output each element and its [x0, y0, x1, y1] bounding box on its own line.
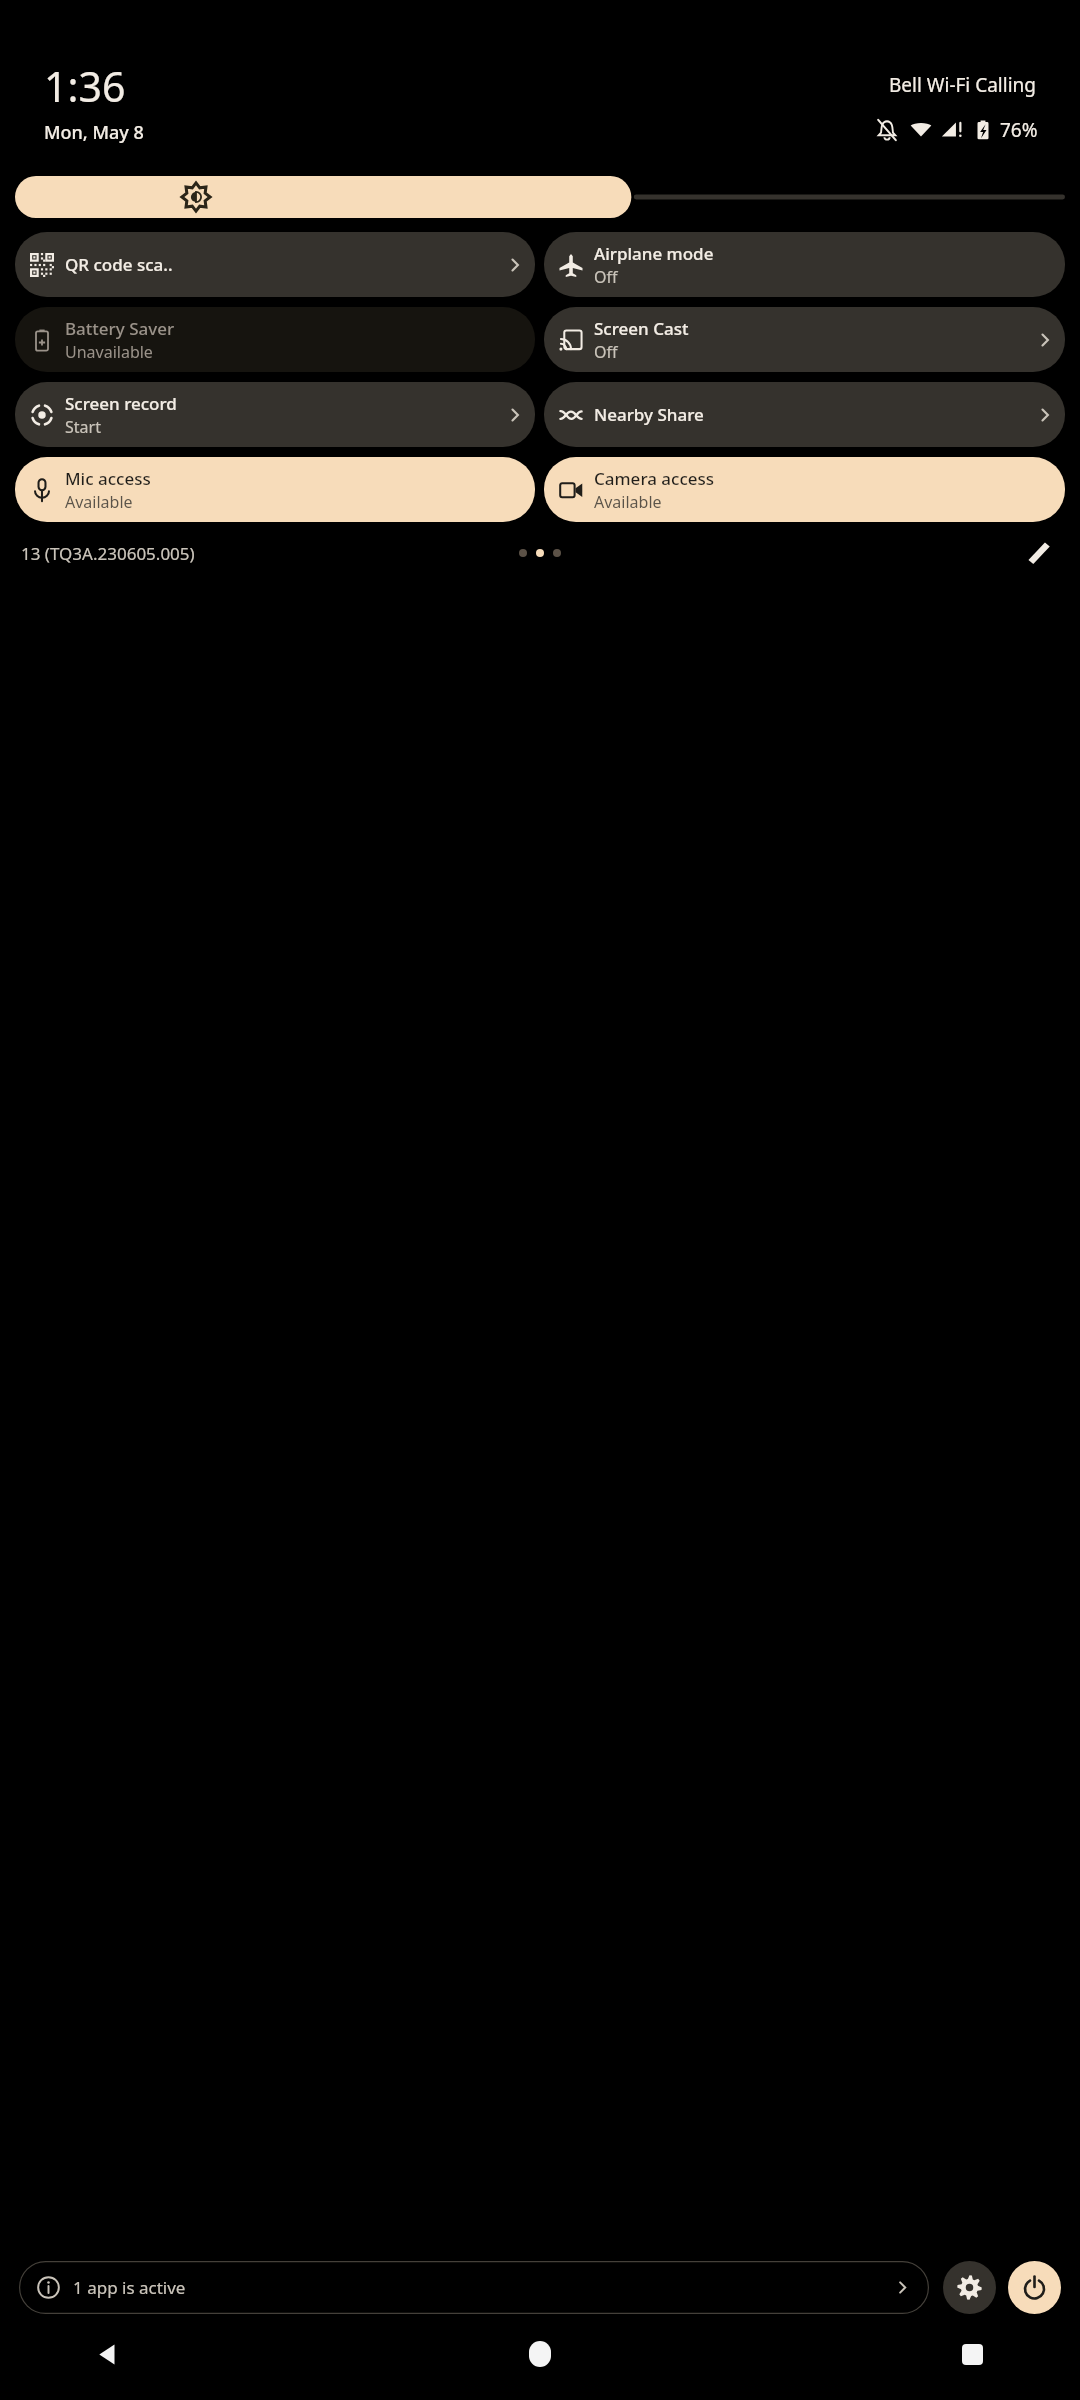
staticText: Unavailable	[65, 341, 153, 363]
staticText: Camera access	[594, 467, 715, 490]
button[interactable]: Recents	[946, 2328, 998, 2380]
button[interactable]: Brightness	[15, 176, 1065, 218]
button[interactable]: Camera access	[544, 457, 1065, 522]
button[interactable]: Home	[514, 2328, 566, 2380]
staticText: Airplane mode	[594, 242, 714, 265]
button[interactable]: Battery Saver	[15, 307, 535, 372]
staticText: Off	[594, 266, 618, 288]
button[interactable]: Back	[82, 2328, 134, 2380]
button[interactable]: 1 app is active	[19, 2261, 929, 2314]
staticText: 13 (TQ3A.230605.005)	[21, 542, 195, 565]
button[interactable]: Edit tiles	[1019, 533, 1059, 573]
staticText: 1:36	[44, 58, 126, 114]
staticText: Available	[594, 491, 662, 513]
button[interactable]: Power	[1008, 2261, 1061, 2314]
button[interactable]: Settings	[943, 2261, 996, 2314]
staticText: Battery Saver	[65, 317, 175, 340]
staticText: Screen record	[65, 392, 177, 415]
staticText: 1 app is active	[73, 2276, 894, 2299]
staticText: Start	[65, 416, 101, 438]
button[interactable]: Screen record	[15, 382, 535, 447]
button[interactable]: Mic access	[15, 457, 535, 522]
staticText: Mic access	[65, 467, 151, 490]
button[interactable]: Nearby Share	[544, 382, 1065, 447]
button[interactable]: Screen Cast	[544, 307, 1065, 372]
button[interactable]: QR code sca..	[15, 232, 535, 297]
staticText: Nearby Share	[594, 403, 704, 426]
staticText: Available	[65, 491, 133, 513]
staticText: Screen Cast	[594, 317, 689, 340]
staticText: QR code sca..	[65, 253, 173, 276]
staticText: 76%	[1000, 117, 1038, 143]
staticText: Mon, May 8	[44, 120, 144, 145]
staticText: Off	[594, 341, 618, 363]
staticText: Bell Wi-Fi Calling	[0, 72, 1036, 98]
button[interactable]: Airplane mode	[544, 232, 1065, 297]
